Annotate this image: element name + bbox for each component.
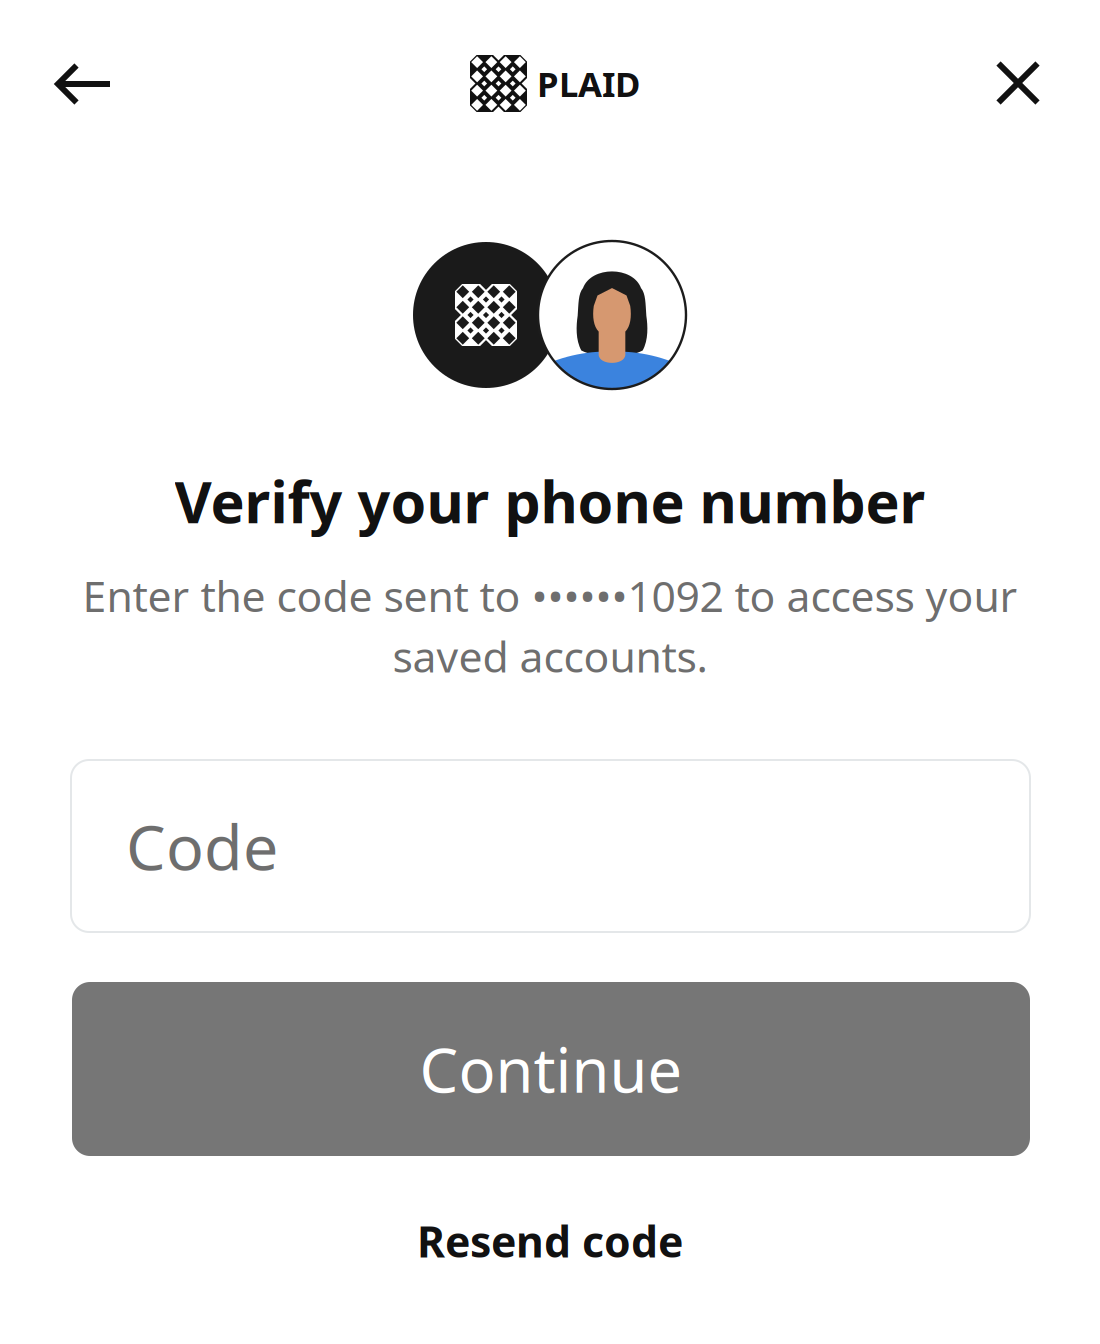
button[interactable]: Resend code bbox=[0, 1201, 1100, 1281]
staticText: Enter the code sent to ••••••1092 to acc… bbox=[82, 567, 1017, 624]
staticText: Resend code bbox=[417, 1213, 683, 1269]
button[interactable]: Back bbox=[28, 28, 140, 140]
button[interactable]: Code bbox=[71, 760, 1030, 932]
staticText: Continue bbox=[419, 1028, 682, 1110]
staticText: saved accounts. bbox=[392, 628, 707, 684]
staticText: Verify your phone number bbox=[174, 463, 925, 539]
staticText: Code bbox=[126, 804, 278, 888]
button[interactable]: Close bbox=[962, 27, 1074, 139]
button[interactable]: Continue bbox=[72, 982, 1030, 1156]
staticText: PLAID bbox=[537, 60, 640, 106]
